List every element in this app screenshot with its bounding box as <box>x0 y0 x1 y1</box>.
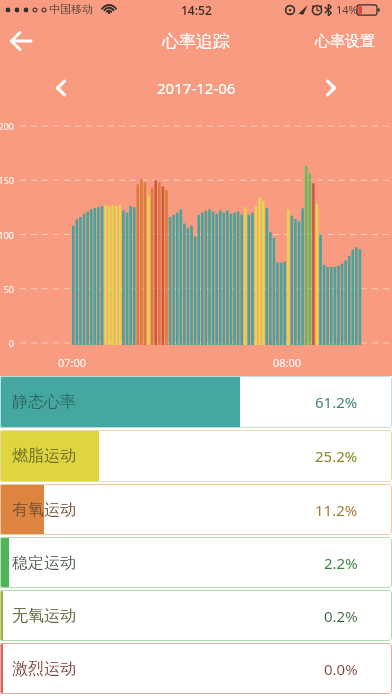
button[interactable]: 有氧运动 <box>0 484 392 535</box>
staticText: 燃脂运动 <box>12 446 76 466</box>
staticText: 无氧运动 <box>12 606 76 626</box>
staticText: 心率设置 <box>315 32 375 51</box>
staticText: 25.2% <box>315 446 358 466</box>
staticText: 11.2% <box>315 500 358 520</box>
staticText: 0.2% <box>324 606 358 626</box>
staticText: 激烈运动 <box>12 659 76 679</box>
staticText: 14% <box>336 2 358 17</box>
staticText: 07:00 <box>54 355 90 370</box>
staticText: 150 <box>0 174 14 186</box>
staticText: 中国移动 <box>49 2 93 16</box>
staticText: 2.2% <box>324 553 358 573</box>
button[interactable]: 燃脂运动 <box>0 430 392 482</box>
button[interactable]: 激烈运动 <box>0 643 392 694</box>
button[interactable] <box>0 20 42 62</box>
button[interactable]: 静态心率 <box>0 376 392 428</box>
button[interactable]: 心率设置 <box>305 24 392 59</box>
button[interactable]: 无氧运动 <box>0 590 392 641</box>
staticText: 08:00 <box>269 355 305 370</box>
button[interactable] <box>44 71 78 105</box>
staticText: 心率追踪 <box>162 31 230 52</box>
staticText: 2017-12-06 <box>157 78 236 98</box>
staticText: 0 <box>0 337 14 349</box>
staticText: 静态心率 <box>12 392 76 412</box>
button[interactable] <box>314 71 348 105</box>
staticText: 100 <box>0 229 14 241</box>
staticText: 61.2% <box>315 392 358 412</box>
staticText: 有氧运动 <box>12 500 76 520</box>
staticText: 50 <box>0 283 14 295</box>
staticText: 14:52 <box>181 2 212 18</box>
staticText: 200 <box>0 120 14 132</box>
button[interactable]: 稳定运动 <box>0 537 392 588</box>
staticText: 稳定运动 <box>12 553 76 573</box>
staticText: 0.0% <box>324 659 358 679</box>
